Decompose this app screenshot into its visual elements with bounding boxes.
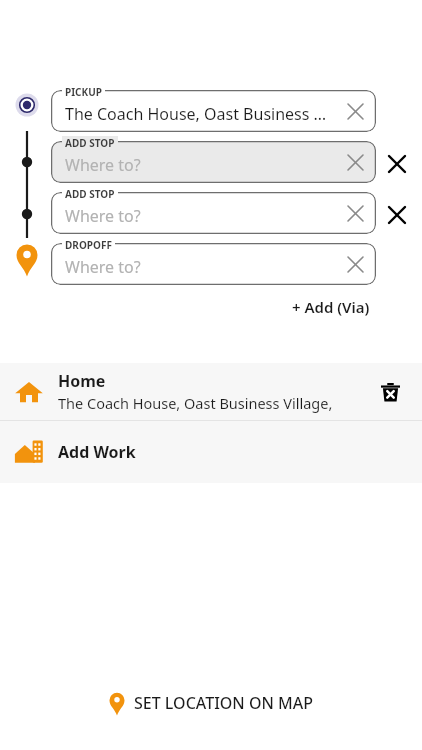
staticText: Where to?: [65, 205, 141, 227]
button[interactable]: + Add (Via): [286, 292, 376, 322]
button[interactable]: Where to?: [51, 141, 376, 183]
button[interactable]: Clear: [338, 196, 372, 230]
staticText: ADD STOP: [65, 136, 115, 150]
button[interactable]: SET LOCATION ON MAP: [99, 686, 323, 720]
staticText: The Coach House, Oast Business Village,: [58, 393, 333, 413]
staticText: Where to?: [65, 256, 141, 278]
staticText: Add Work: [58, 441, 136, 463]
staticText: + Add (Via): [292, 297, 370, 317]
staticText: SET LOCATION ON MAP: [134, 692, 313, 714]
button[interactable]: Where to?: [51, 192, 376, 234]
button[interactable]: Add Work: [0, 421, 422, 483]
staticText: The Coach House, Oast Business Village,: [65, 103, 332, 125]
button[interactable]: Home: [0, 363, 422, 420]
button[interactable]: Where to?: [51, 243, 376, 285]
button[interactable]: Clear: [338, 94, 372, 128]
button[interactable]: Clear: [338, 145, 372, 179]
button[interactable]: Delete home: [370, 372, 410, 412]
button[interactable]: Clear: [338, 247, 372, 281]
staticText: DROPOFF: [65, 238, 112, 252]
staticText: Home: [58, 370, 106, 392]
button[interactable]: Remove stop: [380, 198, 414, 232]
staticText: ADD STOP: [65, 187, 115, 201]
button[interactable]: The Coach House, Oast Business Village,: [51, 90, 376, 132]
button[interactable]: Remove stop: [380, 147, 414, 181]
staticText: PICKUP: [65, 85, 102, 99]
staticText: Where to?: [65, 154, 141, 176]
